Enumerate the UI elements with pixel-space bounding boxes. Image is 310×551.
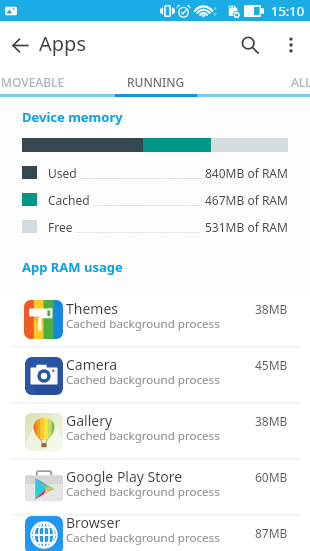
staticText: 15:10 [271, 2, 305, 20]
button[interactable]: Browser [0, 516, 310, 551]
staticText: Google Play Store [66, 467, 183, 486]
staticText: ALL [291, 74, 310, 90]
staticText: 45MB [255, 357, 288, 373]
staticText: 531MB of RAM [205, 219, 288, 235]
button[interactable]: Gallery [0, 404, 310, 458]
staticText: 38MB [255, 301, 288, 317]
button[interactable]: Camera [0, 348, 310, 402]
staticText: Camera [66, 355, 118, 374]
staticText: Cached background process [66, 530, 220, 546]
staticText: MOVEABLE [1, 74, 65, 90]
button[interactable]: MOVEABLE [0, 68, 93, 96]
staticText: Cached background process [66, 372, 220, 388]
staticText: 467MB of RAM [205, 192, 288, 208]
button[interactable]: Search [228, 23, 272, 67]
staticText: 38MB [255, 413, 288, 429]
staticText: Cached background process [66, 428, 220, 444]
staticText: Gallery [66, 411, 113, 430]
staticText: 87MB [255, 525, 288, 541]
staticText: Cached background process [66, 484, 220, 500]
staticText: 840MB of RAM [205, 165, 288, 181]
staticText: Apps [39, 30, 86, 57]
staticText: Used [48, 165, 77, 181]
staticText: Device memory [22, 108, 123, 126]
button[interactable]: RUNNING [96, 68, 216, 96]
staticText: Cached [48, 192, 90, 208]
staticText: Free [48, 219, 73, 235]
staticText: Browser [66, 513, 121, 532]
button[interactable]: Back [0, 25, 40, 65]
staticText: App RAM usage [22, 258, 123, 276]
staticText: 60MB [255, 469, 288, 485]
button[interactable]: ALL [241, 68, 310, 96]
staticText: RUNNING [127, 74, 185, 90]
button[interactable]: More options [272, 26, 310, 64]
button[interactable]: Google Play Store [0, 460, 310, 514]
staticText: Cached background process [66, 316, 220, 332]
staticText: Themes [66, 299, 119, 318]
button[interactable]: Themes [0, 292, 310, 346]
